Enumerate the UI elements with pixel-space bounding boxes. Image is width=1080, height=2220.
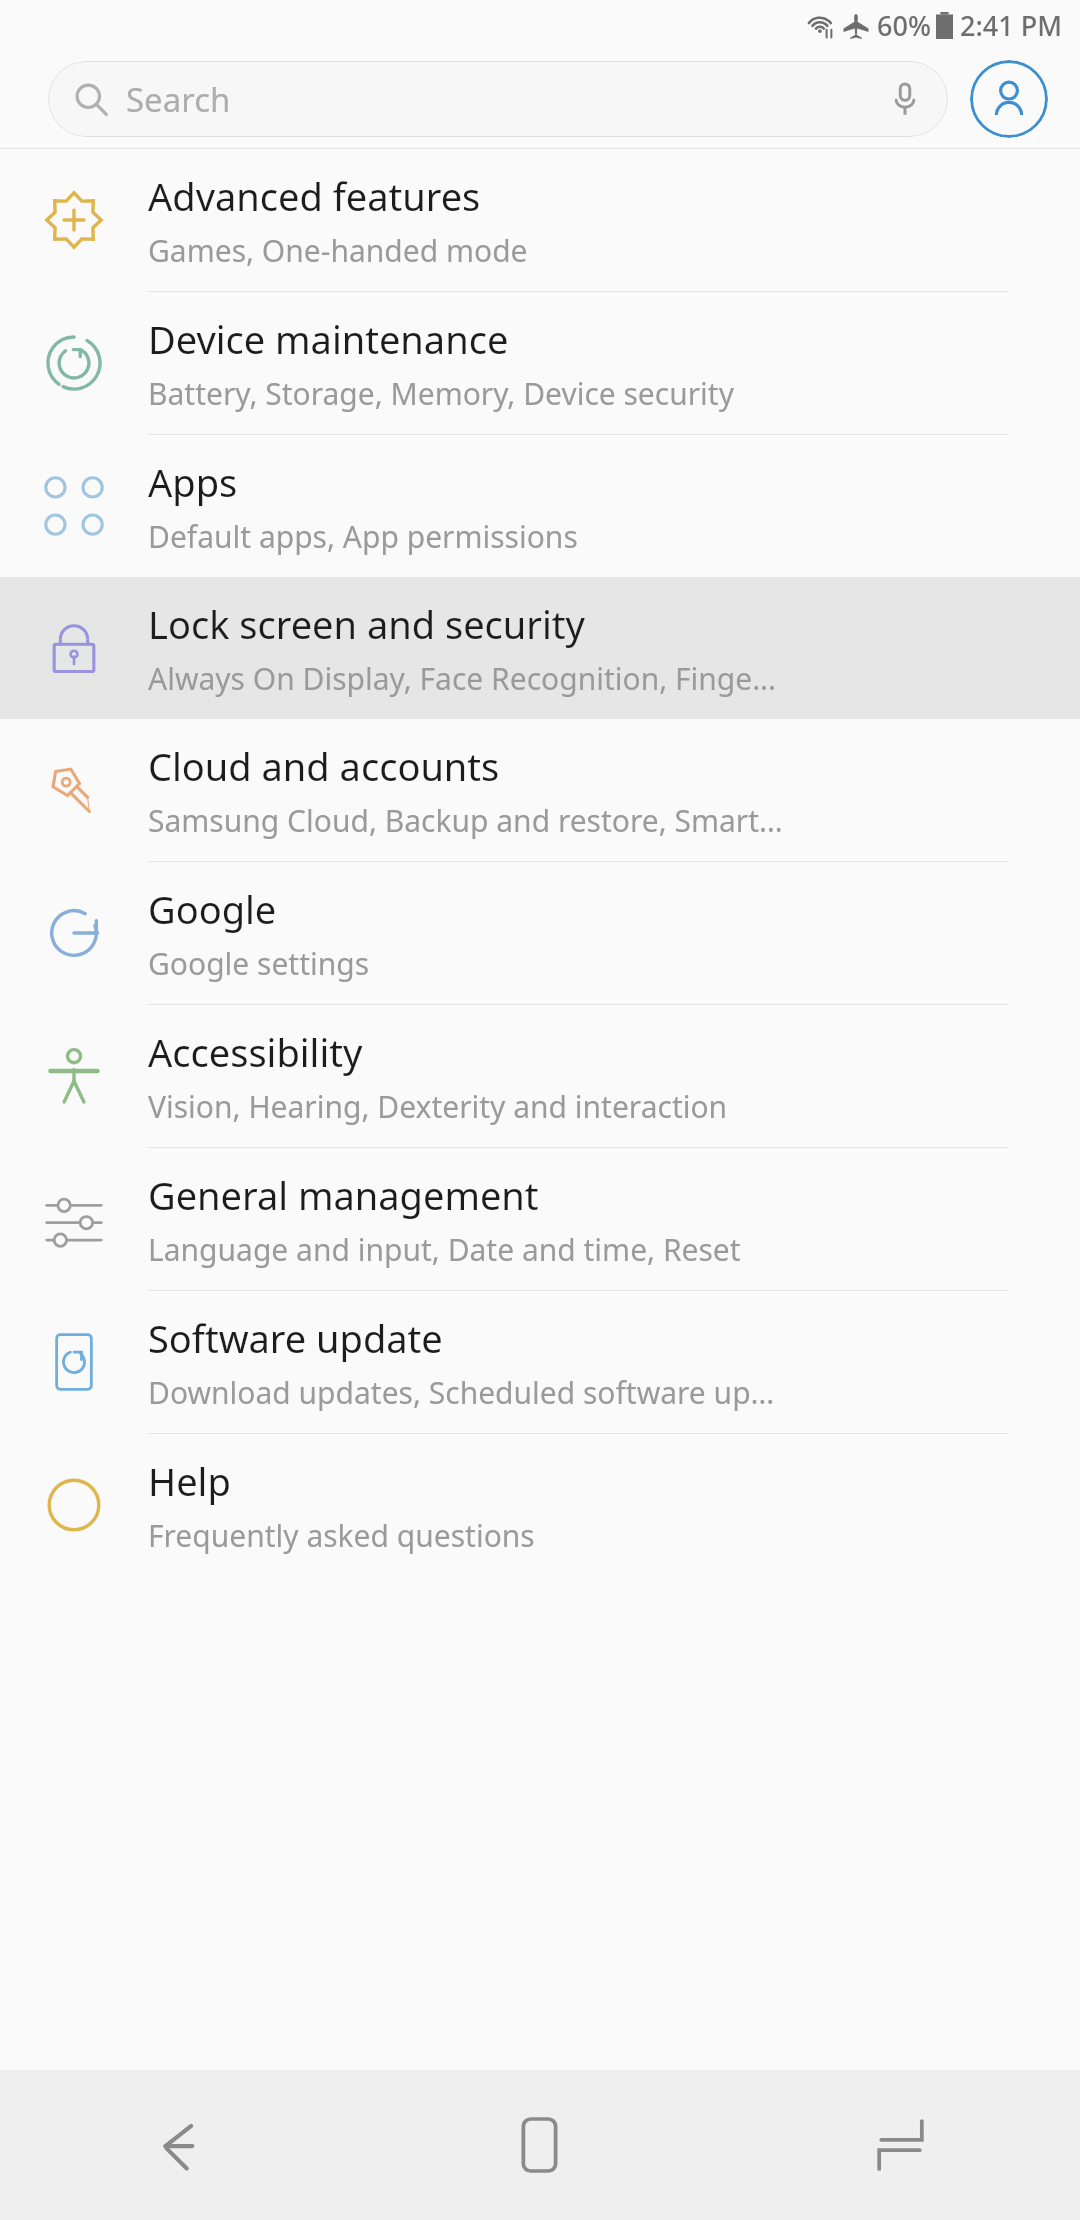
staticText: Language and input, Date and time, Reset	[148, 1229, 741, 1270]
staticText: Search	[126, 77, 231, 122]
button[interactable]: Help	[0, 1434, 1080, 1576]
staticText: Samsung Cloud, Backup and restore, Smart…	[148, 800, 783, 841]
button[interactable]: Search	[48, 61, 948, 137]
staticText: Default apps, App permissions	[148, 516, 578, 557]
staticText: Advanced features	[148, 170, 481, 222]
staticText: Google	[148, 883, 277, 935]
staticText: Vision, Hearing, Dexterity and interacti…	[148, 1086, 728, 1127]
staticText: Help	[148, 1455, 231, 1507]
button[interactable]: Recents	[720, 2070, 1080, 2220]
button[interactable]: Advanced features	[0, 149, 1080, 291]
button[interactable]: Device maintenance	[0, 292, 1080, 434]
staticText: Device maintenance	[148, 313, 509, 365]
staticText: Frequently asked questions	[148, 1515, 535, 1556]
staticText: Cloud and accounts	[148, 740, 500, 792]
button[interactable]: Apps	[0, 435, 1080, 577]
button[interactable]: Cloud and accounts	[0, 719, 1080, 861]
staticText: Download updates, Scheduled software up…	[148, 1372, 775, 1413]
staticText: General management	[148, 1169, 539, 1221]
staticText: Battery, Storage, Memory, Device securit…	[148, 373, 734, 414]
button[interactable]: Accessibility	[0, 1005, 1080, 1147]
other: Voice search	[888, 82, 922, 116]
staticText: 60%	[877, 7, 931, 44]
staticText: 2:41 PM	[960, 7, 1062, 44]
staticText: Software update	[148, 1312, 443, 1364]
button[interactable]: General management	[0, 1148, 1080, 1290]
button[interactable]: Software update	[0, 1291, 1080, 1433]
button[interactable]: Home	[360, 2070, 720, 2220]
staticText: Always On Display, Face Recognition, Fin…	[148, 658, 776, 699]
button[interactable]: Account	[970, 60, 1048, 138]
staticText: Accessibility	[148, 1026, 363, 1078]
staticText: Google settings	[148, 943, 370, 984]
staticText: Games, One-handed mode	[148, 230, 528, 271]
button[interactable]: Lock screen and security	[0, 577, 1080, 719]
staticText: Apps	[148, 456, 238, 508]
button[interactable]: Back	[0, 2070, 360, 2220]
staticText: Lock screen and security	[148, 598, 585, 650]
button[interactable]: Google	[0, 862, 1080, 1004]
